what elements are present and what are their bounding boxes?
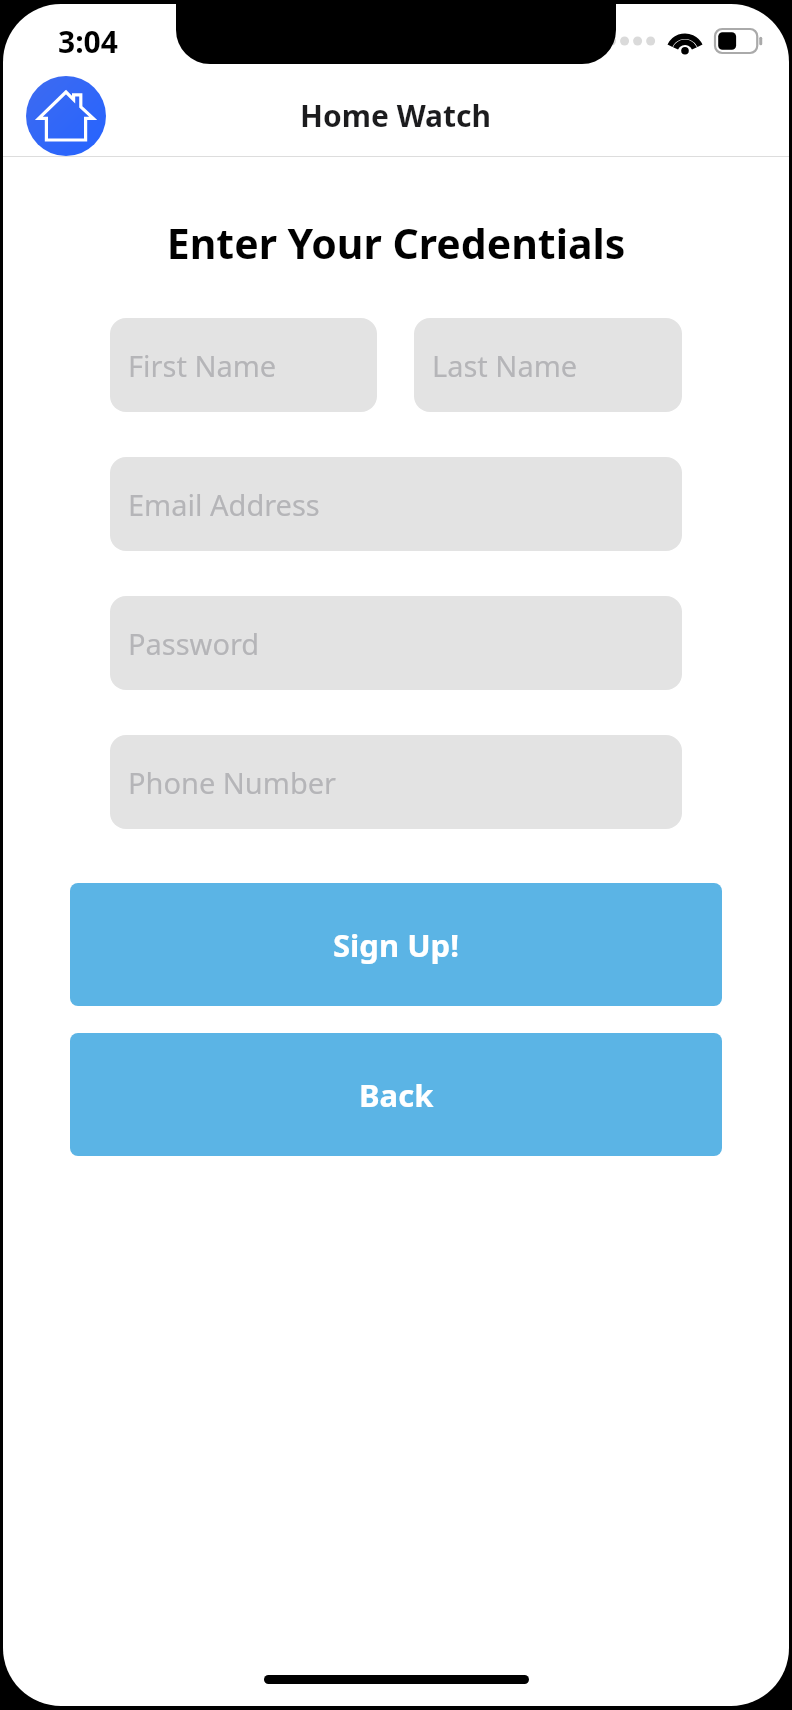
- button[interactable]: First Name: [110, 318, 377, 412]
- staticText: Sign Up!: [333, 924, 459, 966]
- button[interactable]: Last Name: [414, 318, 682, 412]
- staticText: Enter Your Credentials: [3, 215, 789, 271]
- button[interactable]: Sign Up!: [70, 883, 722, 1006]
- button[interactable]: Password: [110, 596, 682, 690]
- button[interactable]: Phone Number: [110, 735, 682, 829]
- staticText: 3:04: [58, 21, 118, 62]
- staticText: Password: [128, 624, 260, 663]
- staticText: Phone Number: [128, 763, 337, 802]
- button[interactable]: Back: [70, 1033, 722, 1156]
- staticText: Back: [359, 1074, 434, 1116]
- button[interactable]: Home: [26, 76, 106, 156]
- staticText: Last Name: [432, 346, 578, 385]
- staticText: First Name: [128, 346, 277, 385]
- staticText: Home Watch: [300, 95, 492, 136]
- staticText: Email Address: [128, 485, 320, 524]
- button[interactable]: Email Address: [110, 457, 682, 551]
